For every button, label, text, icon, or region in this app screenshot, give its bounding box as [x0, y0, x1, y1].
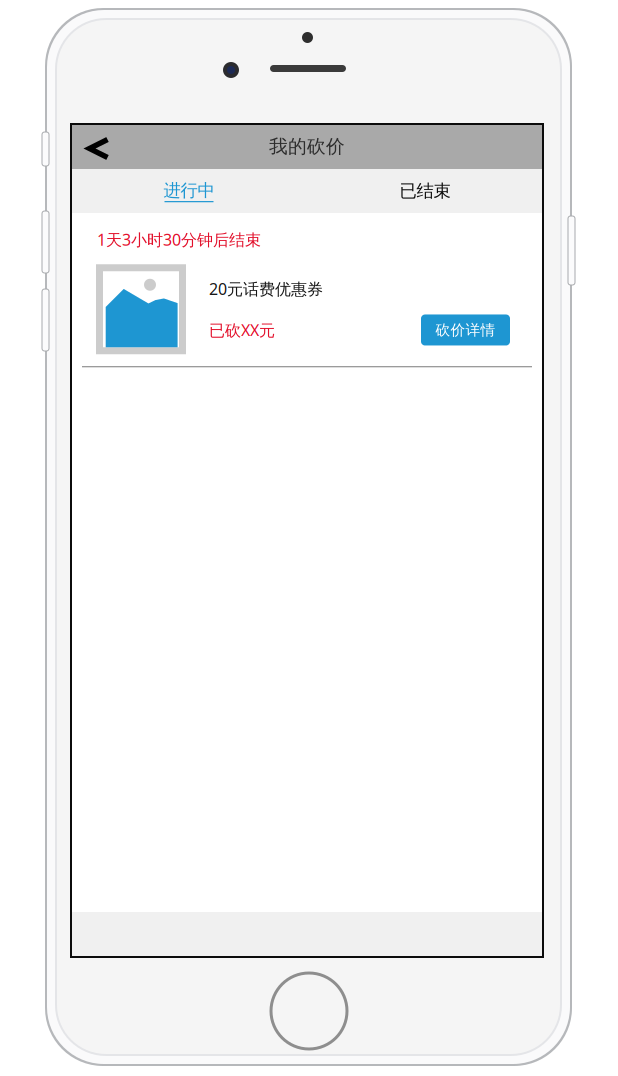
staticText: 1天3小时30分钟后结束 — [97, 229, 261, 250]
staticText: 我的砍价 — [269, 135, 345, 158]
button[interactable]: 进行中 — [71, 169, 307, 213]
button[interactable]: Back — [71, 124, 122, 169]
staticText: 砍价详情 — [435, 321, 495, 339]
button[interactable]: 砍价详情 — [421, 314, 510, 345]
staticText: 进行中 — [163, 180, 214, 201]
staticText: 20元话费优惠券 — [209, 278, 323, 299]
staticText: 已砍XX元 — [209, 319, 275, 341]
staticText: 已结束 — [399, 180, 450, 202]
button[interactable]: 已结束 — [307, 169, 543, 213]
